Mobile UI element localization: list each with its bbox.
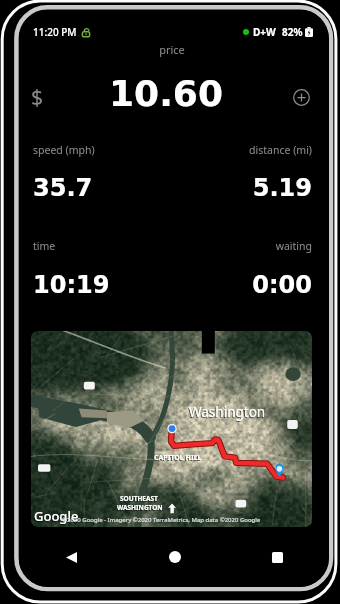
- button[interactable]: Add: [285, 81, 317, 113]
- staticText: 82%: [282, 25, 303, 39]
- staticText: time: [33, 239, 312, 253]
- staticText: CAPITOL HILL: [154, 453, 202, 463]
- staticText: 0:00: [33, 271, 312, 299]
- staticText: distance (mi): [33, 143, 312, 157]
- staticText: D+W: [253, 25, 276, 39]
- staticText: 5.19: [33, 174, 312, 202]
- staticText: SOUTHEAST: [119, 495, 157, 504]
- staticText: Google: [34, 507, 79, 525]
- staticText: 10.60: [19, 73, 321, 115]
- staticText: 11:20 PM: [33, 25, 77, 39]
- staticText: speed (mph): [33, 143, 312, 157]
- button[interactable]: Recent apps: [226, 538, 329, 576]
- staticText: SOUTHEAST: [120, 494, 158, 503]
- staticText: ©2020 Google - Imagery ©2020 TerraMetric…: [62, 516, 261, 524]
- staticText: price: [19, 42, 327, 57]
- staticText: Washington: [188, 404, 265, 422]
- button[interactable]: Home: [123, 538, 226, 576]
- staticText: Washington: [189, 403, 266, 421]
- staticText: WASHINGTON: [117, 503, 163, 512]
- staticText: $: [31, 83, 44, 111]
- staticText: 10:19: [33, 271, 312, 299]
- staticText: Google: [33, 508, 78, 526]
- staticText: CAPITOL HILL: [153, 454, 201, 464]
- button[interactable]: Back: [19, 538, 123, 576]
- button[interactable]: Currency: [24, 83, 50, 111]
- staticText: waiting: [33, 239, 312, 253]
- staticText: WASHINGTON: [116, 504, 162, 513]
- button[interactable]: Washington: [31, 331, 312, 527]
- staticText: 35.7: [33, 174, 312, 202]
